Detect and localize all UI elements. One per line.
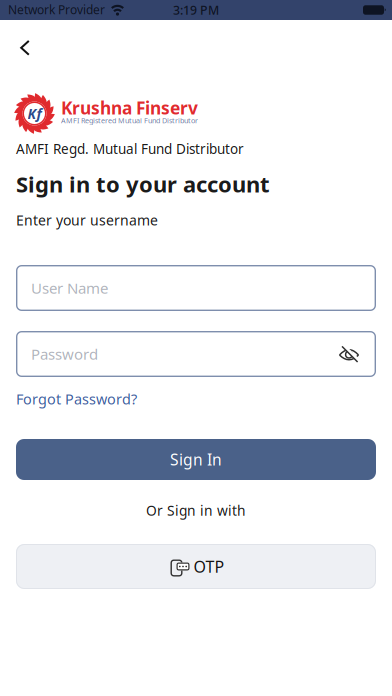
- staticText: Sign in to your account: [16, 169, 270, 199]
- button[interactable]: Back: [0, 28, 46, 68]
- button[interactable]: OTP: [16, 544, 376, 589]
- staticText: Enter your username: [16, 210, 158, 230]
- staticText: Network Provider: [8, 1, 105, 18]
- staticText: User Name: [31, 278, 108, 298]
- staticText: Password: [31, 344, 98, 364]
- staticText: 3:19 PM: [173, 2, 219, 18]
- staticText: Forgot Password?: [16, 389, 137, 409]
- button[interactable]: Show password: [328, 335, 370, 373]
- staticText: Krushna Finserv: [61, 96, 198, 120]
- staticText: Or Sign in with: [146, 501, 246, 520]
- button[interactable]: Sign In: [16, 439, 376, 480]
- staticText: Sign In: [170, 449, 222, 470]
- staticText: AMFI Registered Mutual Fund Distributor: [61, 115, 198, 125]
- staticText: OTP: [193, 556, 224, 577]
- button[interactable]: Forgot Password?: [16, 387, 137, 411]
- staticText: Kf: [27, 104, 41, 123]
- staticText: AMFI Regd. Mutual Fund Distributor: [16, 139, 244, 158]
